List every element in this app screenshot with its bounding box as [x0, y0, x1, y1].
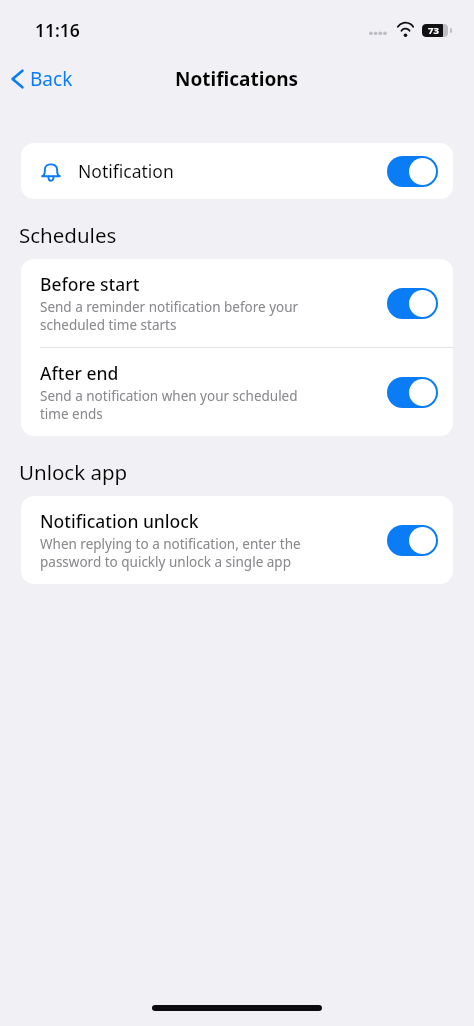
staticText: Notification: [78, 159, 174, 183]
staticText: Back: [30, 66, 73, 92]
button[interactable]: Toggle on: [387, 525, 438, 556]
button[interactable]: After end: [21, 348, 453, 436]
button[interactable]: Toggle on: [387, 377, 438, 408]
staticText: 11:16: [35, 18, 80, 42]
staticText: Notification unlock: [40, 509, 199, 533]
staticText: Before start: [40, 272, 140, 296]
staticText: Send a reminder notification before your…: [40, 298, 299, 334]
other: Notification bell: [38, 158, 64, 184]
button[interactable]: Before start: [21, 259, 453, 347]
staticText: When replying to a notification, enter t…: [40, 535, 301, 571]
button[interactable]: Notification bell: [21, 143, 453, 199]
button[interactable]: Notification unlock: [21, 496, 453, 584]
staticText: After end: [40, 361, 119, 385]
button[interactable]: Back: [0, 60, 83, 98]
button[interactable]: Toggle on: [387, 288, 438, 319]
staticText: Notifications: [175, 66, 299, 92]
staticText: Send a notification when your scheduled …: [40, 387, 298, 423]
staticText: Unlock app: [19, 458, 128, 486]
staticText: 73: [428, 24, 439, 37]
staticText: Schedules: [19, 221, 117, 249]
button[interactable]: Toggle on: [387, 156, 438, 187]
